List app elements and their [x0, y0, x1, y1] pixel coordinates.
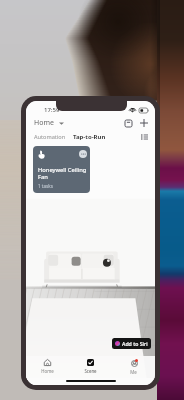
staticText: 17:59: [44, 106, 60, 114]
staticText: Honeywell Ceiling Fan: [38, 166, 87, 181]
staticText: Automation: [34, 133, 66, 141]
button[interactable]: Me: [112, 356, 155, 375]
button[interactable]: Add: [138, 117, 150, 129]
staticText: Tap-to-Run: [73, 133, 106, 141]
button[interactable]: Scene: [69, 356, 112, 374]
staticText: 1 tasks: [38, 183, 53, 189]
button[interactable]: Sort: [138, 131, 150, 143]
button[interactable]: More options: [33, 146, 90, 193]
button[interactable]: Add to Siri: [112, 338, 151, 349]
staticText: Home: [41, 368, 54, 374]
staticText: Home: [34, 118, 54, 128]
button[interactable]: Devices: [122, 117, 134, 129]
button[interactable]: More options: [79, 150, 87, 158]
button[interactable]: Tap-to-Run: [73, 133, 106, 141]
staticText: Scene: [84, 368, 97, 374]
button[interactable]: Home: [26, 356, 69, 374]
button[interactable]: Automation: [34, 133, 66, 141]
staticText: Add to Siri: [122, 340, 148, 347]
button[interactable]: Home: [34, 118, 64, 128]
staticText: Me: [130, 369, 137, 375]
